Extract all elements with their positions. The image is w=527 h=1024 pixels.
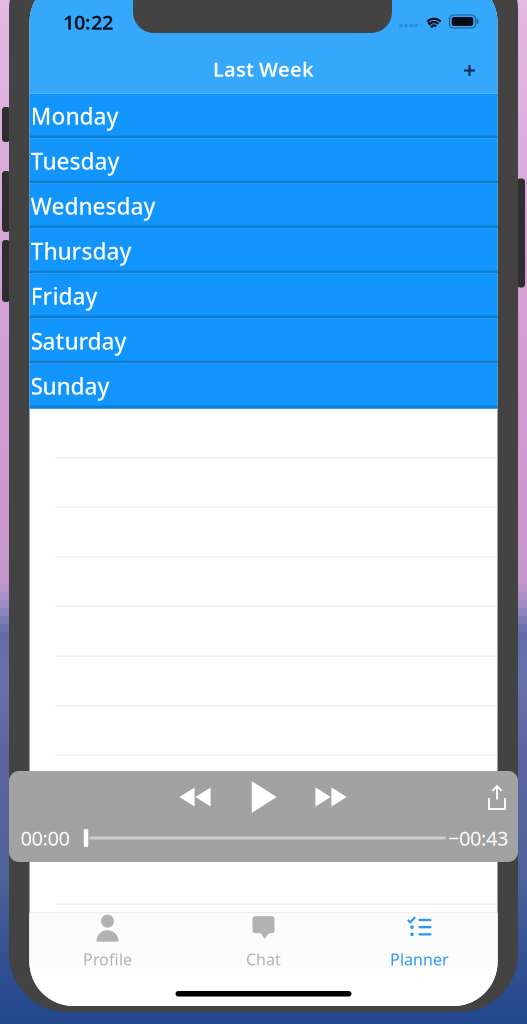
staticText: Tuesday	[30, 146, 119, 176]
button[interactable]: Add	[446, 47, 492, 93]
staticText: 00:00	[20, 825, 69, 851]
staticText: Monday	[30, 101, 118, 131]
button[interactable]: Sunday	[29, 363, 497, 408]
button[interactable]: Thursday	[29, 228, 497, 273]
staticText: −00:43	[448, 825, 508, 851]
staticText: Chat	[246, 949, 281, 970]
button[interactable]: Play	[251, 780, 277, 813]
button[interactable]: Share	[486, 784, 508, 809]
button[interactable]: Fast forward	[315, 787, 347, 807]
staticText: 10:22	[63, 9, 113, 35]
staticText: Last Week	[213, 56, 314, 82]
button[interactable]: Rewind	[179, 787, 211, 807]
button[interactable]: Monday	[29, 93, 497, 138]
button[interactable]: Saturday	[29, 318, 497, 363]
staticText: Friday	[30, 281, 97, 311]
staticText: Thursday	[30, 236, 131, 266]
staticText: Profile	[83, 949, 132, 970]
staticText: Sunday	[30, 371, 109, 401]
staticText: Planner	[390, 949, 449, 970]
button[interactable]: Friday	[29, 273, 497, 318]
button[interactable]: Planner	[341, 915, 497, 968]
staticText: Saturday	[30, 326, 126, 356]
staticText: Wednesday	[30, 191, 155, 221]
button[interactable]: Tuesday	[29, 138, 497, 183]
button[interactable]: Chat	[185, 915, 341, 968]
button[interactable]: Wednesday	[29, 183, 497, 228]
button[interactable]: Profile	[29, 915, 185, 968]
